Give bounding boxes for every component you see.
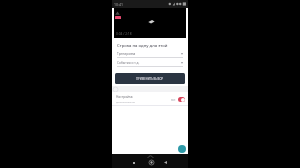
staticText: дополнительно <box>116 100 135 103</box>
staticText: ПРИМЕНИТЬ ВЫБОР <box>136 77 164 81</box>
button[interactable]: Back <box>161 158 170 167</box>
button[interactable]: События и т.д. <box>112 61 188 67</box>
button[interactable]: Home <box>146 157 156 167</box>
button[interactable]: Настройка <box>112 92 188 105</box>
button[interactable]: Add <box>178 145 186 153</box>
staticText: Настройка <box>116 95 133 99</box>
button[interactable]: Toggle <box>178 97 185 102</box>
staticText: События и т.д. <box>117 61 140 65</box>
button[interactable]: Тренировка <box>112 52 188 58</box>
staticText: вкл <box>171 98 176 102</box>
button[interactable]: Recents <box>129 158 138 167</box>
staticText: 10:41 <box>114 2 123 7</box>
staticText: Тренировка <box>117 52 136 56</box>
staticText: 0:04 / 2:18 <box>116 32 132 36</box>
button[interactable]: ПРИМЕНИТЬ ВЫБОР <box>115 73 185 84</box>
staticText: Строка на одну для этой <box>117 43 168 49</box>
